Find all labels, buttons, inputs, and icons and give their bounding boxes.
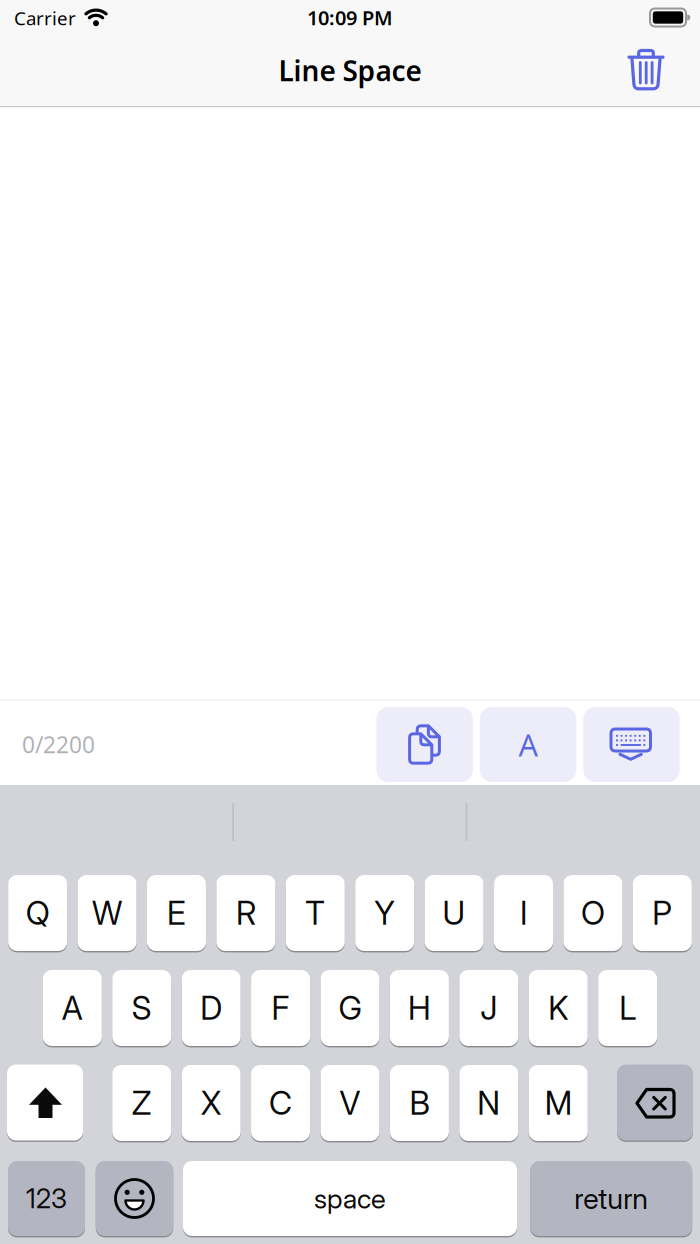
button[interactable]: U — [425, 875, 484, 951]
staticText: Q — [26, 894, 50, 932]
staticText: I — [520, 894, 527, 932]
button[interactable]: Paste — [376, 707, 473, 782]
button[interactable]: Backspace — [617, 1064, 693, 1140]
staticText: V — [339, 1084, 360, 1122]
staticText: J — [480, 989, 497, 1027]
staticText: K — [548, 989, 568, 1027]
button[interactable]: T — [286, 875, 345, 951]
button[interactable]: E — [147, 875, 206, 951]
staticText: B — [409, 1084, 429, 1122]
button[interactable]: S — [112, 970, 171, 1046]
staticText: Y — [374, 894, 395, 932]
button[interactable]: O — [563, 875, 622, 951]
staticText: return — [574, 1181, 648, 1216]
button[interactable]: L — [598, 970, 657, 1046]
staticText: Line Space — [278, 52, 421, 89]
staticText: D — [200, 989, 222, 1027]
staticText: 123 — [26, 1182, 67, 1215]
staticText: M — [545, 1084, 572, 1122]
button[interactable]: Z — [112, 1065, 171, 1141]
button[interactable]: C — [251, 1065, 310, 1141]
button[interactable]: Emoji — [96, 1161, 173, 1236]
button[interactable]: N — [459, 1065, 518, 1141]
staticText: Carrier — [14, 6, 76, 30]
button[interactable]: X — [182, 1065, 241, 1141]
button[interactable]: H — [390, 970, 449, 1046]
button[interactable]: M — [529, 1065, 588, 1141]
staticText: Z — [132, 1084, 152, 1122]
staticText: O — [581, 894, 605, 932]
button[interactable]: Dismiss keyboard — [583, 707, 680, 782]
staticText: 0/2200 — [22, 729, 95, 759]
button[interactable]: R — [216, 875, 275, 951]
button[interactable]: P — [633, 875, 692, 951]
staticText: T — [305, 894, 325, 932]
button[interactable]: K — [529, 970, 588, 1046]
staticText: N — [477, 1084, 500, 1122]
staticText: P — [652, 894, 672, 932]
button[interactable]: F — [251, 970, 310, 1046]
staticText: 10:09 PM — [307, 4, 393, 31]
button[interactable]: 123 — [8, 1161, 85, 1236]
staticText: H — [408, 989, 431, 1027]
staticText: G — [338, 989, 361, 1027]
button[interactable]: B — [390, 1065, 449, 1141]
staticText: W — [92, 894, 122, 932]
button[interactable]: Text style — [480, 707, 576, 782]
button[interactable]: Delete — [622, 45, 670, 93]
staticText: A — [518, 724, 538, 765]
button[interactable]: return — [530, 1161, 692, 1236]
staticText: L — [619, 989, 636, 1027]
button[interactable]: A — [43, 970, 102, 1046]
button[interactable]: J — [459, 970, 518, 1046]
button[interactable]: Shift — [7, 1064, 83, 1140]
button[interactable]: G — [320, 970, 379, 1046]
button[interactable]: D — [182, 970, 241, 1046]
button[interactable]: W — [78, 875, 137, 951]
button[interactable]: V — [320, 1065, 379, 1141]
button[interactable]: space — [183, 1161, 517, 1236]
staticText: space — [314, 1182, 386, 1215]
button[interactable]: Y — [355, 875, 414, 951]
button[interactable]: Text input — [8, 707, 370, 782]
staticText: E — [167, 894, 186, 932]
button[interactable]: I — [494, 875, 553, 951]
staticText: X — [201, 1084, 222, 1122]
staticText: U — [443, 894, 466, 932]
staticText: F — [272, 989, 290, 1027]
staticText: R — [236, 894, 256, 932]
staticText: S — [132, 989, 152, 1027]
staticText: A — [62, 989, 83, 1027]
button[interactable]: Q — [8, 875, 67, 951]
staticText: C — [269, 1084, 292, 1122]
